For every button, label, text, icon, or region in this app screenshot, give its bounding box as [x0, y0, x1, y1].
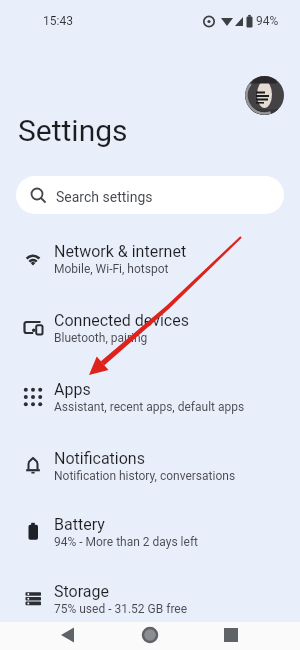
button[interactable]: Network & internet — [0, 224, 300, 293]
button[interactable] — [245, 76, 284, 115]
staticText: Network & internet — [54, 242, 187, 261]
button[interactable]: Battery — [0, 497, 300, 566]
staticText: Assistant, recent apps, default apps — [54, 400, 245, 414]
button[interactable]: Search settings — [16, 176, 284, 214]
button[interactable]: Connected devices — [0, 293, 300, 362]
staticText: Bluetooth, pairing — [54, 331, 148, 345]
staticText: 94% - More than 2 days left — [54, 535, 198, 549]
button[interactable] — [217, 622, 245, 650]
button[interactable]: Apps — [0, 362, 300, 431]
staticText: Apps — [54, 380, 91, 399]
staticText: Settings — [18, 113, 128, 148]
staticText: Search settings — [56, 189, 153, 205]
staticText: Storage — [54, 582, 109, 601]
staticText: Notification history, conversations — [54, 469, 236, 483]
button[interactable] — [53, 622, 81, 650]
button[interactable] — [136, 622, 164, 650]
staticText: Notifications — [54, 449, 145, 468]
button[interactable]: Storage — [0, 564, 300, 633]
staticText: 94% — [256, 14, 279, 28]
staticText: 15:43 — [43, 14, 73, 28]
staticText: Connected devices — [54, 311, 189, 330]
staticText: Mobile, Wi-Fi, hotspot — [54, 262, 169, 276]
staticText: 75% used - 31.52 GB free — [54, 602, 188, 616]
button[interactable]: Notifications — [0, 431, 300, 500]
staticText: Battery — [54, 515, 105, 534]
